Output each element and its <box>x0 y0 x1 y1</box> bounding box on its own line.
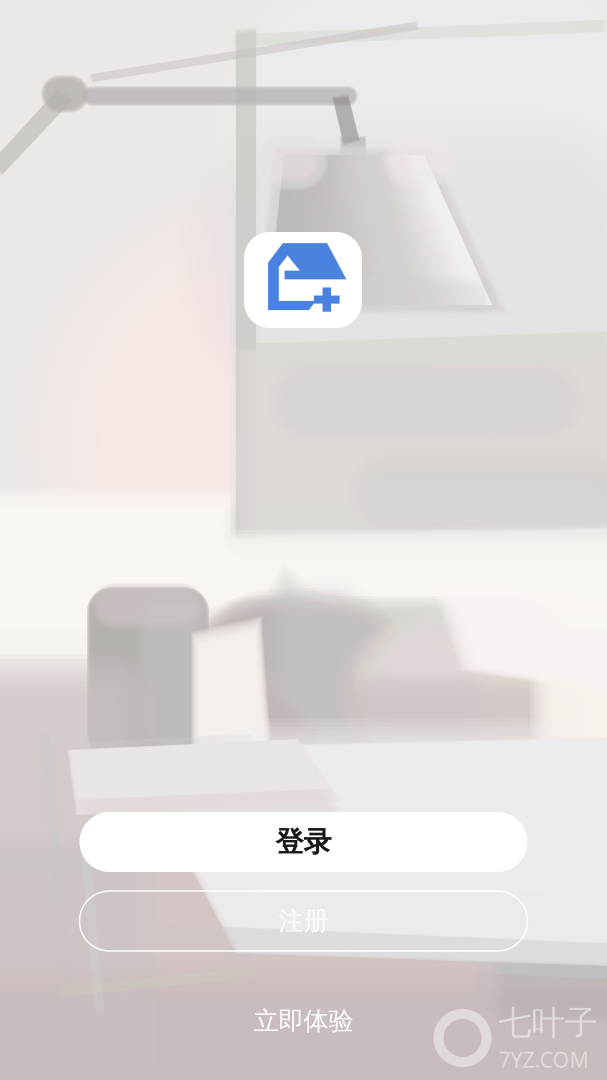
staticText: 七叶子 <box>498 1002 597 1043</box>
button[interactable]: 注册 <box>79 891 527 951</box>
staticText: 注册 <box>278 905 328 936</box>
staticText: 立即体验 <box>253 1005 353 1036</box>
button[interactable]: 立即体验 <box>193 1003 413 1039</box>
staticText: 7YZ.COM <box>498 1045 588 1074</box>
button[interactable]: 登录 <box>79 812 527 872</box>
staticText: 登录 <box>275 825 331 859</box>
